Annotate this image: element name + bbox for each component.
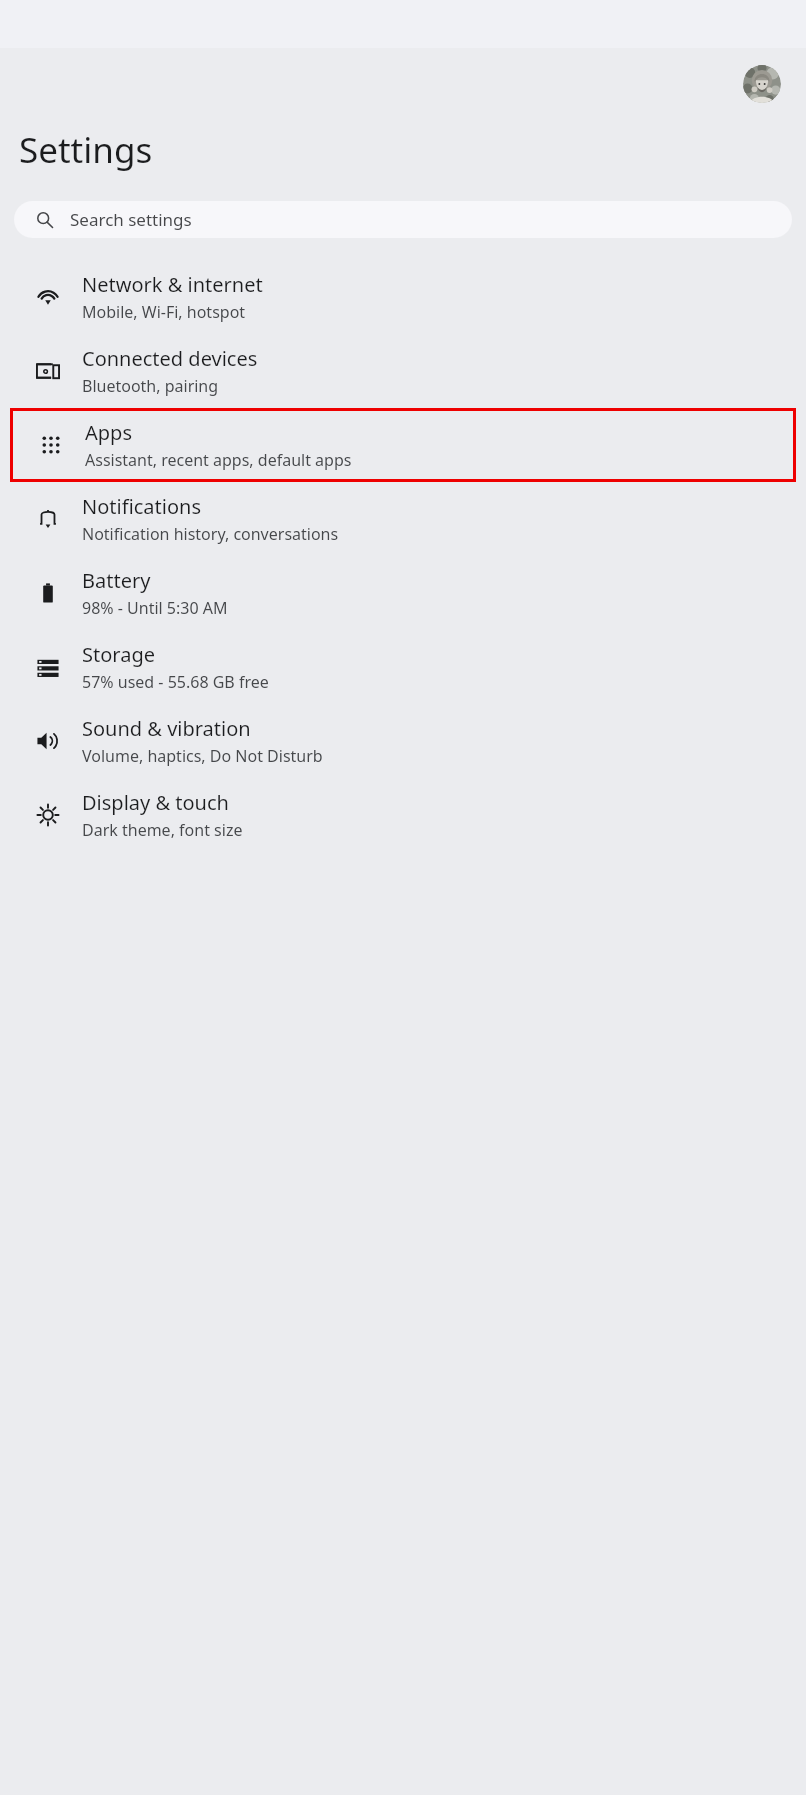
staticText: Connected devices [82, 345, 258, 372]
staticText: Display & touch [82, 789, 229, 816]
staticText: Dark theme, font size [82, 819, 243, 841]
button[interactable]: Sound & vibration [0, 704, 806, 778]
button[interactable]: Search settings [14, 201, 792, 238]
staticText: Apps [85, 419, 132, 446]
staticText: Settings [19, 126, 153, 174]
staticText: Assistant, recent apps, default apps [85, 449, 352, 471]
button[interactable]: Notifications [0, 482, 806, 556]
staticText: Search settings [70, 208, 192, 231]
button[interactable]: Apps [13, 411, 793, 479]
staticText: Network & internet [82, 271, 263, 298]
staticText: Notification history, conversations [82, 523, 339, 545]
button[interactable]: Display & touch [0, 778, 806, 852]
staticText: Battery [82, 567, 151, 594]
staticText: Storage [82, 641, 155, 668]
button[interactable]: Connected devices [0, 334, 806, 408]
staticText: 98% - Until 5:30 AM [82, 597, 228, 619]
staticText: Sound & vibration [82, 715, 251, 742]
button[interactable]: Storage [0, 630, 806, 704]
staticText: Mobile, Wi-Fi, hotspot [82, 301, 246, 323]
button[interactable]: Network & internet [0, 260, 806, 334]
staticText: 57% used - 55.68 GB free [82, 671, 269, 693]
staticText: Bluetooth, pairing [82, 375, 219, 397]
staticText: Notifications [82, 493, 201, 520]
button[interactable]: Account [743, 65, 781, 103]
button[interactable]: Battery [0, 556, 806, 630]
staticText: Volume, haptics, Do Not Disturb [82, 745, 323, 767]
